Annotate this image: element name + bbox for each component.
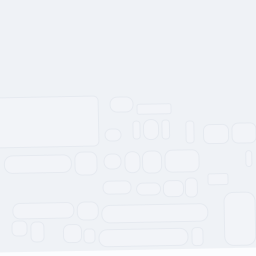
button[interactable]: Item	[103, 154, 120, 169]
button[interactable]: Item	[245, 153, 251, 169]
button[interactable]: Item	[124, 152, 139, 173]
button[interactable]: Item	[61, 223, 79, 241]
button[interactable]: Item	[190, 229, 201, 247]
button[interactable]: Item	[142, 151, 161, 173]
button[interactable]: Item	[110, 97, 133, 112]
button[interactable]: Item	[207, 175, 227, 186]
button[interactable]: Item	[186, 122, 194, 144]
button[interactable]: Item	[133, 121, 140, 139]
button[interactable]: Item	[82, 228, 93, 242]
button[interactable]: Item	[162, 181, 182, 197]
button[interactable]: Item	[102, 181, 130, 194]
button[interactable]: Item	[203, 126, 228, 145]
button[interactable]: Item	[105, 129, 121, 141]
button[interactable]: Item	[162, 121, 169, 140]
button[interactable]: Item	[76, 201, 97, 219]
button[interactable]: Item	[135, 183, 159, 195]
button[interactable]: Item	[184, 179, 196, 198]
button[interactable]: Item	[10, 219, 25, 234]
button[interactable]: Item	[143, 120, 158, 140]
